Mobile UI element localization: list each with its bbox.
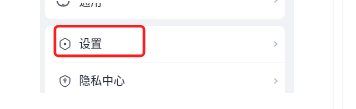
staticText: 设置 [79,35,102,52]
button[interactable]: General [45,0,285,19]
button[interactable] [45,26,285,62]
button[interactable] [45,63,285,99]
staticText: 通用 [79,0,109,13]
staticText: 隐私中心 [79,72,125,89]
